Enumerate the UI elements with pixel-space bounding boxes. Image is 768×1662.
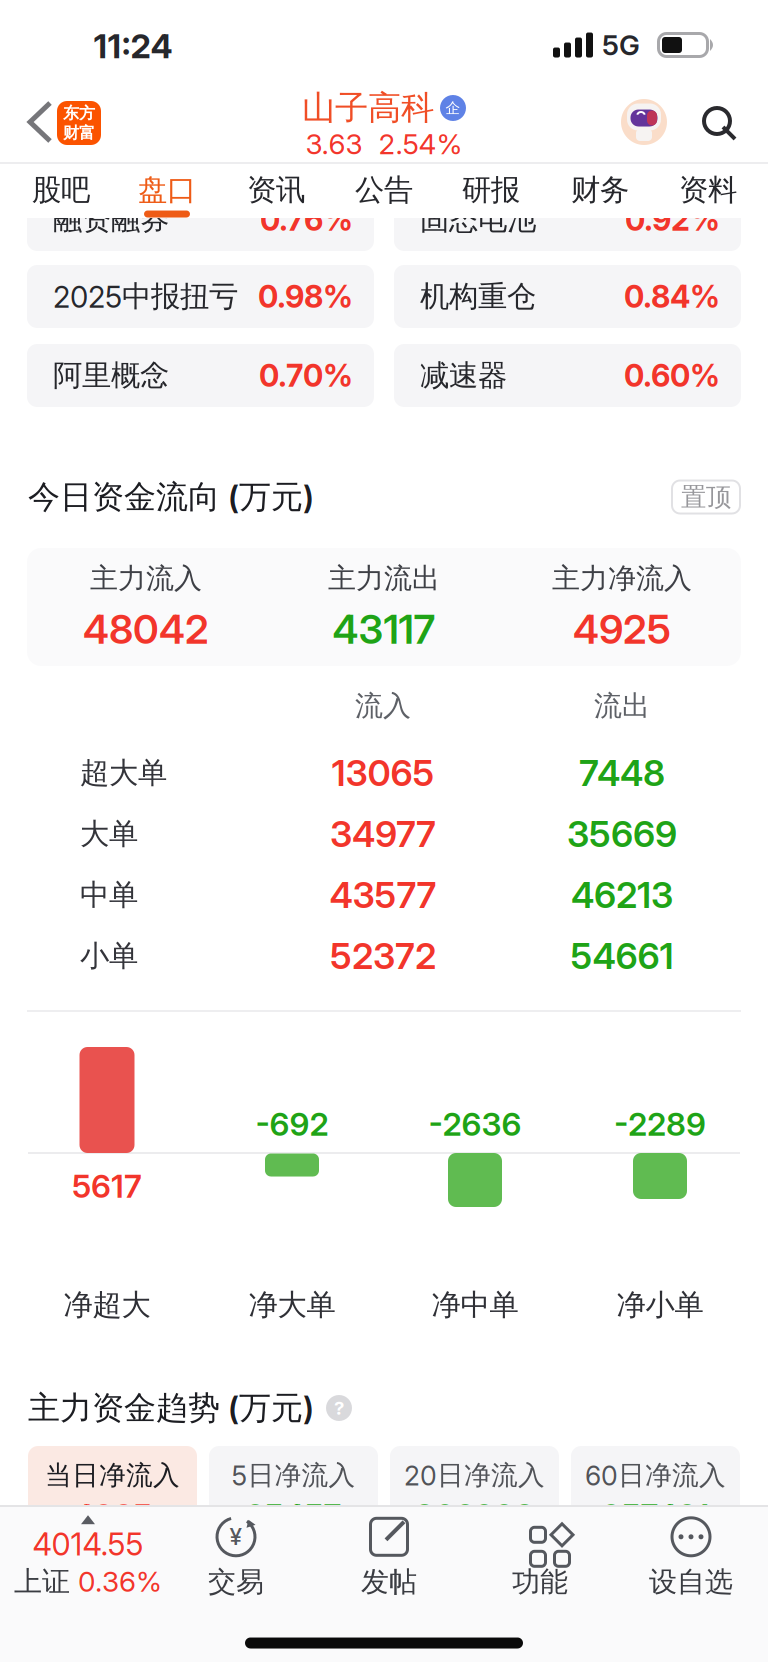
staticText: 0.76% <box>260 201 353 238</box>
staticText: 设自选 <box>649 1565 733 1599</box>
staticText: 机构重仓 <box>420 278 536 314</box>
button[interactable]: 资料 <box>658 166 758 214</box>
staticText: 4925 <box>573 606 671 653</box>
staticText: 52372 <box>330 935 436 977</box>
staticText: 资讯 <box>247 172 305 208</box>
staticText: 大单 <box>80 816 138 852</box>
staticText: 4925 <box>73 1497 152 1535</box>
staticText: 功能 <box>512 1565 568 1599</box>
staticText: 25457 <box>245 1497 341 1535</box>
staticText: 35669 <box>567 813 677 855</box>
staticText: 企 <box>445 99 460 117</box>
staticText: 主力流出 <box>328 561 440 596</box>
button[interactable]: 置顶 <box>671 479 741 514</box>
staticText: -2636 <box>428 1105 521 1143</box>
staticText: 资料 <box>679 172 737 208</box>
button[interactable]: 发帖 <box>361 1515 417 1599</box>
button[interactable]: 5日净流入 <box>209 1446 378 1556</box>
button[interactable]: 股吧 <box>11 166 111 214</box>
button[interactable]: 减速器 <box>394 344 741 407</box>
staticText: 43577 <box>329 874 436 916</box>
staticText: ¥ <box>229 1523 242 1550</box>
button[interactable]: 功能 <box>512 1515 568 1599</box>
staticText: 0.36% <box>78 1565 162 1598</box>
staticText: 957421 <box>601 1497 709 1535</box>
button[interactable]: AI assistant <box>621 97 667 147</box>
staticText: 盘口 <box>138 172 196 208</box>
staticText: 交易 <box>208 1565 264 1599</box>
button[interactable]: 20日净流入 <box>390 1446 559 1556</box>
staticText: -692 <box>255 1105 328 1143</box>
button[interactable]: 研报 <box>441 166 541 214</box>
button[interactable]: 阿里概念 <box>27 344 374 407</box>
staticText: 7448 <box>579 752 665 794</box>
button[interactable]: Help <box>326 1395 352 1421</box>
staticText: 融资融券 <box>53 201 169 237</box>
staticText: 主力净流入 <box>552 561 692 596</box>
staticText: 主力流入 <box>90 561 202 596</box>
staticText: 2025中报扭亏 <box>53 278 238 314</box>
staticText: ? <box>334 1397 344 1419</box>
staticText: 20日净流入 <box>404 1459 545 1492</box>
button[interactable]: 当日净流入 <box>28 1446 197 1556</box>
staticText: 财富 <box>63 123 95 143</box>
staticText: -2289 <box>614 1105 706 1143</box>
button[interactable]: 东方财富 <box>57 101 101 145</box>
staticText: 3.63 2.54% <box>305 127 462 160</box>
button[interactable]: 公告 <box>334 166 434 214</box>
staticText: 48042 <box>83 606 209 653</box>
staticText: 净小单 <box>616 1287 703 1323</box>
staticText: 0.84% <box>624 278 720 315</box>
button[interactable]: 资讯 <box>226 166 326 214</box>
staticText: 5G <box>602 28 640 61</box>
staticText: 13065 <box>331 752 434 794</box>
button[interactable]: 固态电池 <box>394 188 741 251</box>
button[interactable]: 财务 <box>550 166 650 214</box>
staticText: 阿里概念 <box>53 357 169 393</box>
staticText: 今日资金流向 (万元) <box>28 477 314 517</box>
staticText: 发帖 <box>361 1565 417 1599</box>
button[interactable]: Back <box>28 101 54 145</box>
staticText: 0.92% <box>625 201 720 238</box>
staticText: 34977 <box>330 813 436 855</box>
staticText: 山子高科 <box>302 87 434 128</box>
staticText: 净超大 <box>63 1287 150 1323</box>
staticText: 0.98% <box>258 278 353 315</box>
staticText: 研报 <box>462 172 520 208</box>
button[interactable]: 融资融券 <box>27 188 374 251</box>
button[interactable]: 60日净流入 <box>571 1446 740 1556</box>
button[interactable]: Search <box>696 100 738 142</box>
staticText: 54661 <box>570 935 673 977</box>
staticText: 5日净流入 <box>231 1459 355 1492</box>
staticText: 流出 <box>594 689 650 723</box>
button[interactable]: 机构重仓 <box>394 265 741 328</box>
staticText: 60日净流入 <box>585 1459 726 1492</box>
staticText: 302993 <box>414 1497 534 1535</box>
staticText: 46213 <box>571 874 673 916</box>
staticText: 财务 <box>571 172 629 208</box>
staticText: 固态电池 <box>420 201 536 237</box>
staticText: 减速器 <box>420 357 507 393</box>
staticText: 净大单 <box>248 1287 335 1323</box>
staticText: 公告 <box>355 172 413 208</box>
button[interactable]: 2025中报扭亏 <box>27 265 374 328</box>
staticText: 净中单 <box>431 1287 518 1323</box>
staticText: 11:24 <box>93 26 172 66</box>
staticText: 43117 <box>332 606 435 653</box>
button[interactable]: 上证指数 <box>14 1515 162 1599</box>
staticText: 当日净流入 <box>45 1459 180 1492</box>
staticText: 超大单 <box>80 755 167 791</box>
staticText: 0.60% <box>624 357 720 394</box>
staticText: 上证 <box>14 1564 70 1599</box>
staticText: 东方 <box>63 103 95 123</box>
staticText: 中单 <box>80 877 138 913</box>
staticText: 流入 <box>355 689 411 723</box>
staticText: 4014.55 <box>32 1526 143 1562</box>
staticText: 5617 <box>72 1167 142 1205</box>
staticText: 小单 <box>80 938 138 974</box>
button[interactable]: 设自选 <box>649 1515 733 1599</box>
button[interactable]: 交易 <box>208 1515 264 1599</box>
staticText: 置顶 <box>681 481 731 512</box>
button[interactable]: 盘口 <box>117 166 217 214</box>
staticText: 0.70% <box>259 357 353 394</box>
